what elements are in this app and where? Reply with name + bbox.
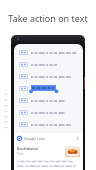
- button[interactable]: [19, 58, 80, 70]
- button[interactable]: [19, 118, 80, 130]
- button[interactable]: [19, 70, 80, 82]
- button[interactable]: More options: [75, 136, 80, 141]
- button[interactable]: Selection handles: [19, 82, 80, 94]
- staticText: Take action on text: [0, 12, 96, 24]
- other: Selection handles: [19, 82, 80, 94]
- staticText: Dish: [17, 152, 24, 156]
- button[interactable]: [19, 94, 80, 106]
- button[interactable]: Bouillabaisse photo: [65, 146, 80, 157]
- button[interactable]: [19, 106, 80, 118]
- staticText: Bouillabaisse: [17, 146, 39, 151]
- staticText: Google Lens: [24, 136, 45, 141]
- button[interactable]: Google Lens: [17, 135, 80, 142]
- button[interactable]: [19, 46, 80, 58]
